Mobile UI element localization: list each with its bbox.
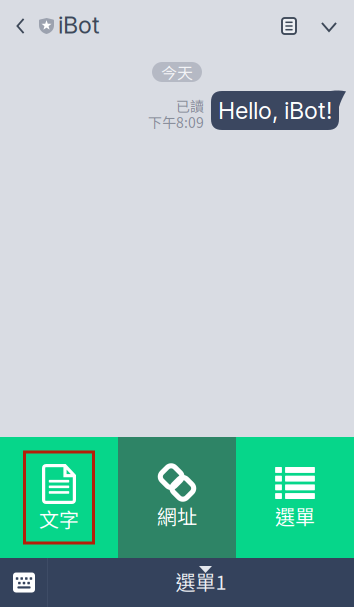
- button[interactable]: 網址: [118, 437, 236, 558]
- button[interactable]: 選單: [236, 437, 354, 558]
- staticText: 網址: [157, 501, 197, 530]
- staticText: 已讀: [176, 95, 204, 116]
- staticText: Hello, iBot!: [218, 96, 332, 125]
- button[interactable]: 文字: [0, 437, 118, 558]
- staticText: iBot: [58, 11, 100, 39]
- button[interactable]: iBot: [39, 0, 110, 48]
- staticText: 今天: [161, 60, 193, 84]
- staticText: 選單1: [175, 566, 226, 595]
- button[interactable]: Collapse: [306, 0, 352, 48]
- staticText: 選單: [275, 501, 315, 530]
- button[interactable]: Keyboard: [0, 558, 48, 607]
- staticText: 文字: [39, 504, 79, 533]
- staticText: 下午8:09: [148, 112, 204, 132]
- button[interactable]: Back: [2, 0, 39, 48]
- button[interactable]: 選單1: [48, 558, 354, 607]
- button[interactable]: Notes: [272, 0, 306, 48]
